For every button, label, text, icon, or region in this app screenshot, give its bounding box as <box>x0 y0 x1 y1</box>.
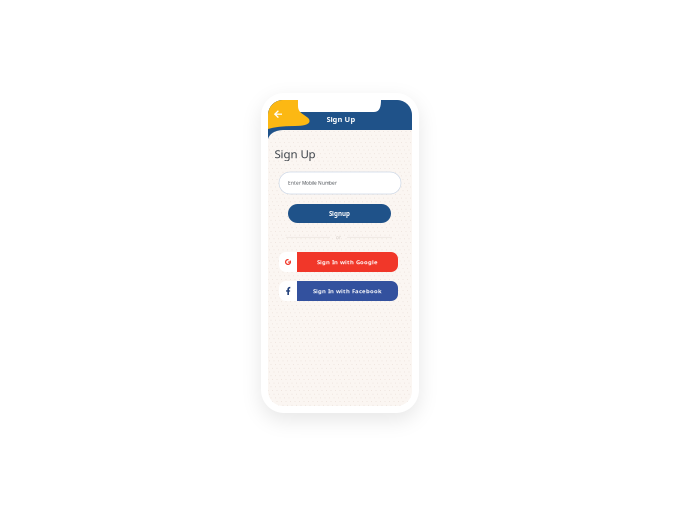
staticText: Sign Up <box>274 146 315 162</box>
staticText: or <box>336 234 341 241</box>
staticText: Sign Up <box>326 114 355 124</box>
button[interactable]: Sign In with Facebook <box>279 281 398 301</box>
staticText: Signup <box>329 209 350 218</box>
button[interactable]: Back <box>268 100 310 129</box>
button[interactable]: Sign In with Google <box>279 252 398 272</box>
button[interactable]: Signup <box>288 204 391 223</box>
staticText: Sign In with Google <box>317 258 378 266</box>
staticText: Enter Mobile Number <box>288 180 337 186</box>
staticText: Sign In with Facebook <box>313 287 382 295</box>
